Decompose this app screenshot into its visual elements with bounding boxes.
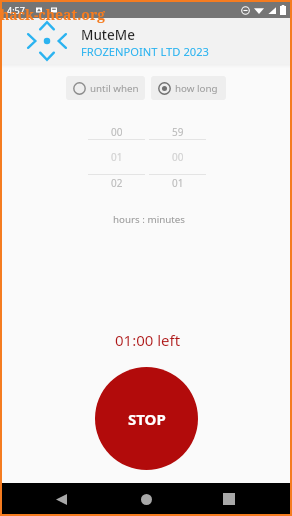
button[interactable]: Recents <box>214 484 244 514</box>
button[interactable]: how long <box>151 76 226 100</box>
staticText: 01:00 left <box>115 330 181 350</box>
staticText: MuteMe <box>81 26 135 44</box>
button[interactable]: until when <box>66 76 145 100</box>
staticText: hours : minutes <box>113 213 186 226</box>
staticText: until when <box>90 82 139 95</box>
staticText: 4:57 <box>7 4 25 16</box>
staticText: 00 <box>111 125 123 139</box>
staticText: 02 <box>111 176 123 190</box>
staticText: 00 <box>172 150 184 164</box>
staticText: 01 <box>111 150 123 164</box>
button[interactable]: Back <box>46 484 76 514</box>
staticText: how long <box>175 82 218 95</box>
button[interactable]: Home <box>131 484 161 514</box>
button[interactable]: App icon <box>27 21 67 61</box>
staticText: STOP <box>128 409 166 429</box>
staticText: 59 <box>172 125 184 139</box>
staticText: 01 <box>172 176 184 190</box>
staticText: FROZENPOINT LTD 2023 <box>81 44 209 59</box>
button[interactable]: STOP <box>95 367 198 470</box>
staticText: hack-cheat.org <box>0 5 106 24</box>
